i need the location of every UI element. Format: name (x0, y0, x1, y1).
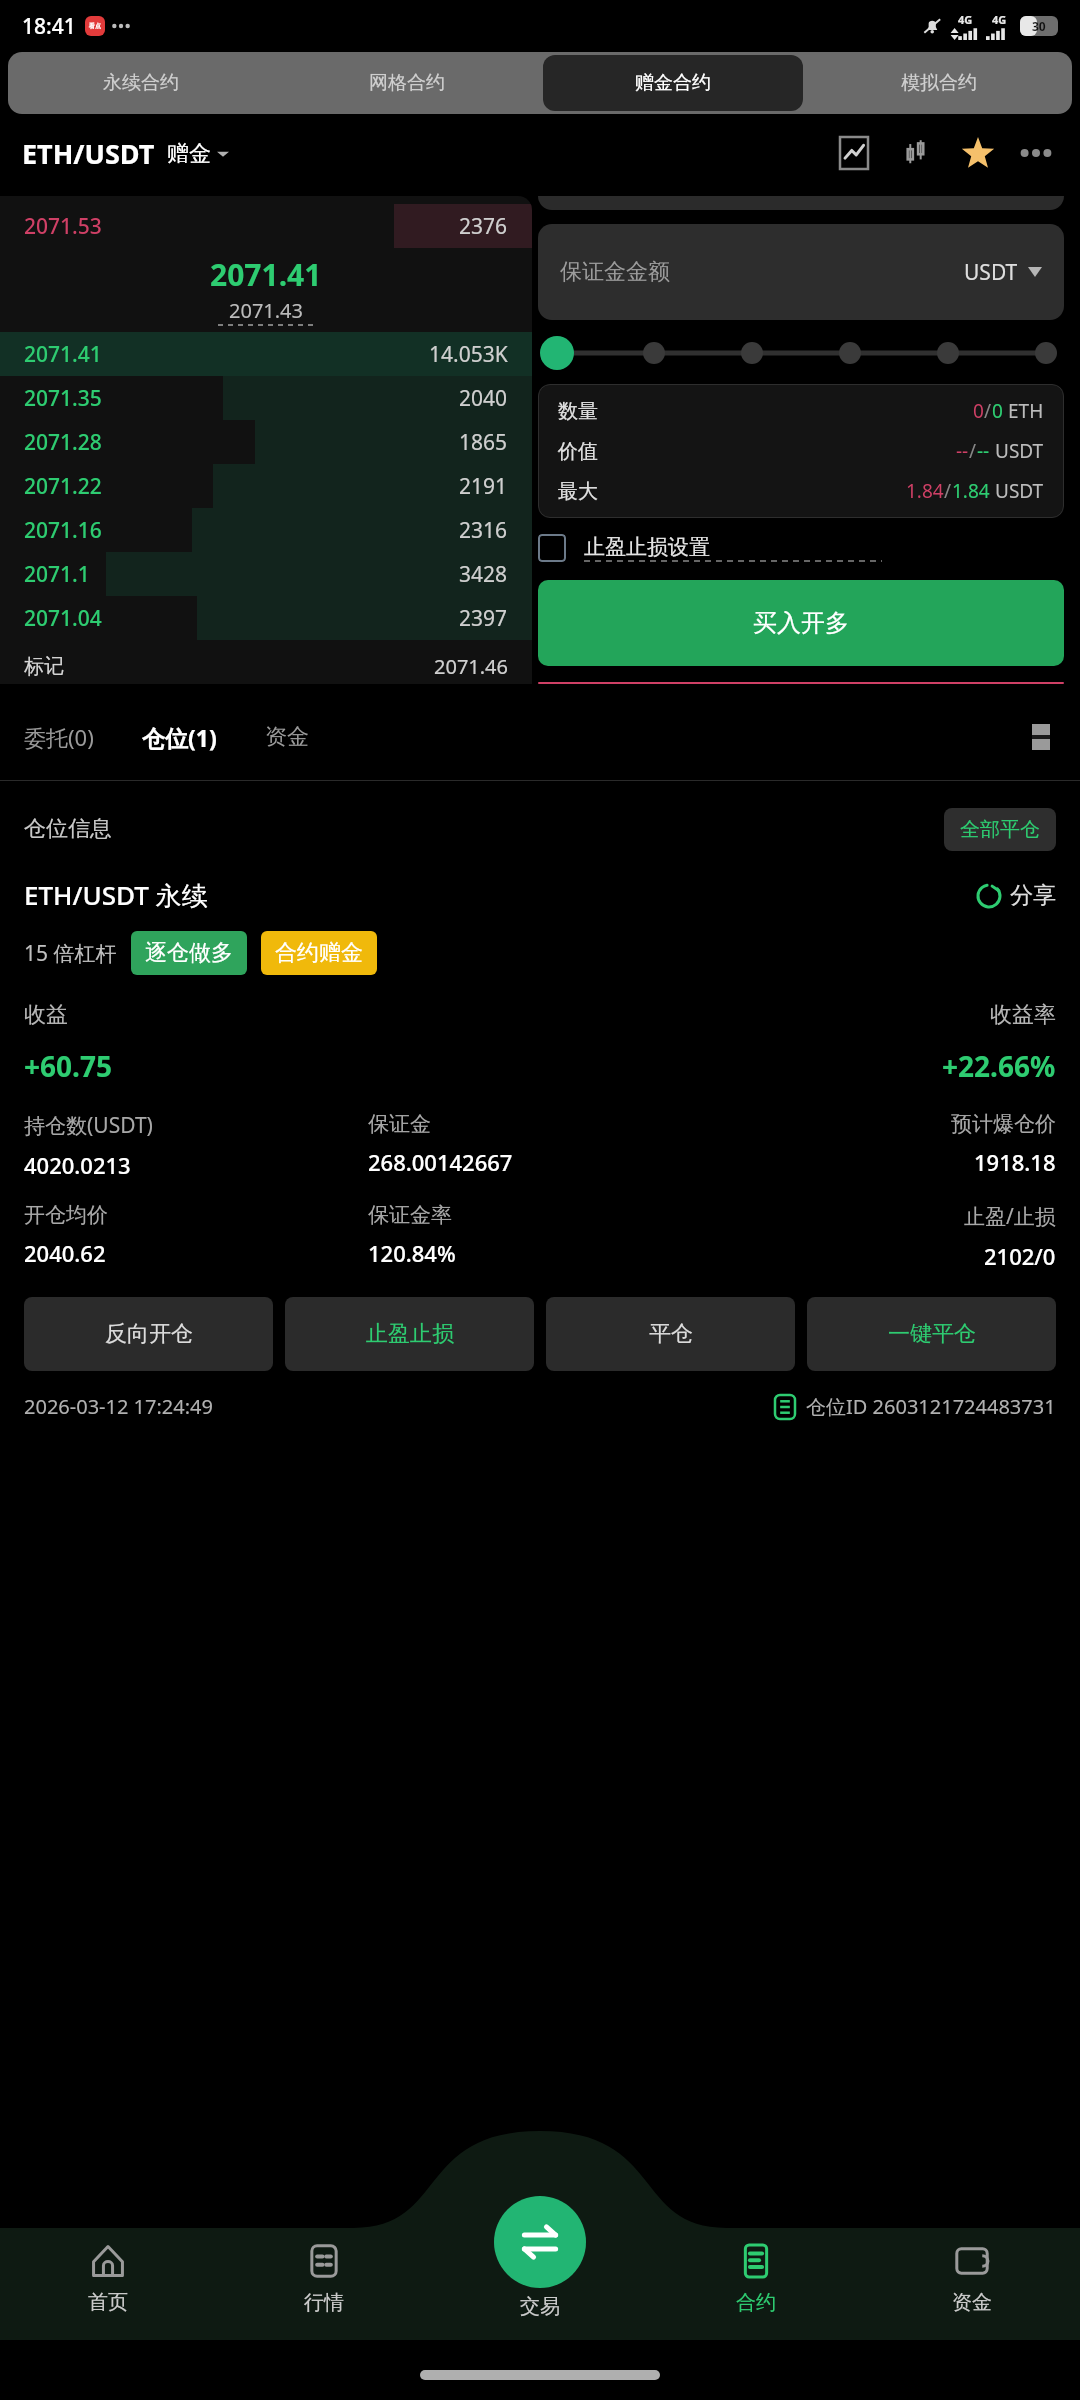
staticText: 2040 (459, 384, 508, 413)
staticText: 15 倍杠杆 (24, 939, 117, 968)
button[interactable]: 反向开仓 (24, 1297, 273, 1371)
button[interactable]: 永续合约 (11, 55, 271, 111)
staticText: 1865 (459, 428, 508, 457)
staticText: / (969, 438, 977, 464)
staticText: 模拟合约 (901, 71, 977, 95)
staticText: 30 (1032, 18, 1046, 34)
button[interactable]: 保证金金额 (538, 224, 1064, 320)
staticText: 3428 (459, 560, 508, 589)
button[interactable]: Filter (1026, 722, 1056, 752)
button[interactable]: 资金 (265, 723, 309, 751)
staticText: 一键平仓 (888, 1320, 976, 1348)
button[interactable]: 2071.16 (0, 508, 532, 552)
button[interactable]: 交易 Trade (494, 2196, 586, 2288)
button[interactable]: Chart (832, 131, 876, 175)
button[interactable]: 2071.28 (0, 420, 532, 464)
staticText: 数量 (558, 399, 598, 424)
staticText: 2397 (459, 604, 508, 633)
button[interactable]: 全部平仓 (944, 808, 1056, 851)
staticText: USDT (995, 438, 1044, 464)
button[interactable]: 分享 (976, 881, 1056, 910)
staticText: 持仓数(USDT) (24, 1111, 153, 1140)
button[interactable]: 2071.41 (0, 332, 532, 376)
staticText: 仓位(1) (142, 722, 217, 753)
staticText: 止盈止损设置 (584, 534, 710, 560)
staticText: 仓位ID 2603121724483731 (806, 1393, 1056, 1420)
staticText: 收益 (24, 1001, 68, 1029)
staticText: 0 (992, 398, 1003, 424)
staticText: -- (977, 438, 990, 464)
staticText: 赠金合约 (635, 71, 711, 95)
staticText: 2071.35 (24, 384, 102, 413)
staticText: 4G (992, 12, 1007, 27)
staticText: 全部平仓 (960, 817, 1040, 842)
staticText: 仓位信息 (24, 815, 112, 843)
staticText: 平仓 (649, 1320, 693, 1348)
button[interactable]: Favorite (956, 131, 1000, 175)
staticText: 2071.1 (24, 560, 90, 589)
staticText: 资金 (265, 723, 309, 751)
button[interactable]: 行情 (216, 2238, 432, 2315)
staticText: 120.84% (368, 1238, 456, 1268)
button[interactable]: 卖出开空 (538, 682, 1064, 684)
button[interactable]: 资金 (864, 2238, 1080, 2315)
staticText: +22.66% (942, 1047, 1056, 1085)
staticText: 0 (973, 398, 984, 424)
button[interactable]: 2071.22 (0, 464, 532, 508)
staticText: 合约 (736, 2290, 776, 2315)
button[interactable]: 止盈止损设置 (538, 534, 1064, 562)
button[interactable]: 合约 (648, 2238, 864, 2315)
button[interactable]: 合约赠金 (261, 931, 377, 975)
staticText: 2071.28 (24, 428, 102, 457)
staticText: 2376 (459, 212, 508, 241)
staticText: 1.84 (906, 478, 944, 504)
staticText: / (944, 478, 952, 504)
staticText: 开仓均价 (24, 1202, 108, 1228)
staticText: 止盈/止损 (964, 1202, 1056, 1231)
button[interactable]: 仓位(1) (142, 722, 217, 753)
staticText: +60.75 (24, 1047, 112, 1085)
staticText: 2071.43 (229, 297, 303, 324)
button[interactable]: 委托(0) (24, 722, 94, 752)
button[interactable]: More (1014, 131, 1058, 175)
staticText: 2071.53 (24, 212, 102, 241)
staticText: 保证金金额 (560, 258, 670, 286)
button[interactable]: 网格合约 (277, 55, 537, 111)
button[interactable]: 2071.04 (0, 596, 532, 640)
staticText: 2071.16 (24, 516, 102, 545)
staticText: ETH/USDT 永续 (24, 877, 208, 913)
staticText: ETH/USDT (22, 135, 155, 172)
staticText: 最大 (558, 479, 598, 504)
button[interactable]: 首页 (0, 2238, 216, 2315)
staticText: 4020.0213 (24, 1150, 131, 1180)
staticText: 1918.18 (974, 1147, 1056, 1177)
staticText: 2316 (459, 516, 508, 545)
button[interactable]: 2071.1 (0, 552, 532, 596)
staticText: 2191 (459, 472, 508, 501)
staticText: 2071.41 (24, 340, 102, 369)
staticText: 交易 (520, 2294, 560, 2319)
button[interactable]: 平仓 (546, 1297, 795, 1371)
staticText: -- (956, 438, 969, 464)
staticText: 14.053K (429, 340, 508, 369)
button[interactable]: ETH/USDT (22, 135, 229, 172)
button[interactable]: 买入开多 (538, 580, 1064, 666)
staticText: 网格合约 (369, 71, 445, 95)
button[interactable]: 2071.35 (0, 376, 532, 420)
staticText: 2102/0 (984, 1241, 1056, 1271)
staticText: 保证金 (368, 1111, 431, 1137)
staticText: 买入开多 (753, 608, 849, 638)
button[interactable]: 赠金合约 (543, 55, 803, 111)
staticText: 委托(0) (24, 722, 94, 752)
staticText: 18:41 (22, 12, 76, 41)
button[interactable]: 模拟合约 (809, 55, 1069, 111)
button[interactable]: 2071.53 (0, 204, 532, 248)
staticText: 行情 (304, 2290, 344, 2315)
staticText: 收益率 (990, 1001, 1056, 1029)
staticText: 价值 (558, 439, 598, 464)
button[interactable]: 止盈止损 (285, 1297, 534, 1371)
button[interactable]: 一键平仓 (807, 1297, 1056, 1371)
button[interactable]: 逐仓做多 (131, 931, 247, 975)
button[interactable]: Candles (894, 131, 938, 175)
button[interactable]: Leverage slider (538, 336, 1064, 370)
